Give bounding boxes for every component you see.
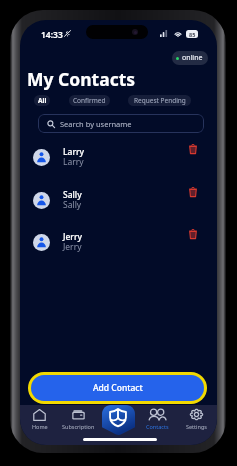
button[interactable]: Protection <box>102 405 135 435</box>
button[interactable]: Add Contact <box>28 372 207 404</box>
button[interactable]: Delete Sally <box>185 185 200 198</box>
staticText: Larry <box>63 146 85 158</box>
staticText: 14:33 <box>41 29 63 41</box>
staticText: Request Pending <box>134 96 186 105</box>
button[interactable]: Larry <box>20 140 217 182</box>
button[interactable]: Sally <box>20 183 217 225</box>
button[interactable]: Subscription <box>59 405 98 435</box>
button[interactable]: Jerry <box>20 225 217 267</box>
staticText: Home <box>32 423 48 430</box>
staticText: Contacts <box>146 423 169 430</box>
staticText: Settings <box>186 423 207 430</box>
button[interactable]: Search by username <box>38 114 204 133</box>
staticText: Add Contact <box>93 382 143 394</box>
staticText: Jerry <box>63 241 82 253</box>
staticText: Sally <box>63 189 82 201</box>
staticText: online <box>182 53 203 63</box>
staticText: Subscription <box>62 423 95 430</box>
staticText: Jerry <box>63 231 83 243</box>
button[interactable]: Home <box>20 405 59 435</box>
staticText: Search by username <box>60 119 132 129</box>
button[interactable]: Settings <box>177 405 216 435</box>
staticText: Sally <box>63 199 82 211</box>
staticText: My Contacts <box>27 67 136 91</box>
button[interactable]: Delete Jerry <box>185 227 200 240</box>
button[interactable]: Contacts <box>138 405 177 435</box>
staticText: 85 <box>189 31 196 38</box>
button[interactable]: Confirmed <box>69 95 110 106</box>
staticText: All <box>38 96 47 105</box>
staticText: Confirmed <box>73 96 106 105</box>
button[interactable]: All <box>34 95 50 106</box>
staticText: Larry <box>63 156 84 168</box>
button[interactable]: Request Pending <box>128 95 191 106</box>
button[interactable]: online <box>172 51 208 65</box>
button[interactable]: Delete Larry <box>185 142 200 155</box>
